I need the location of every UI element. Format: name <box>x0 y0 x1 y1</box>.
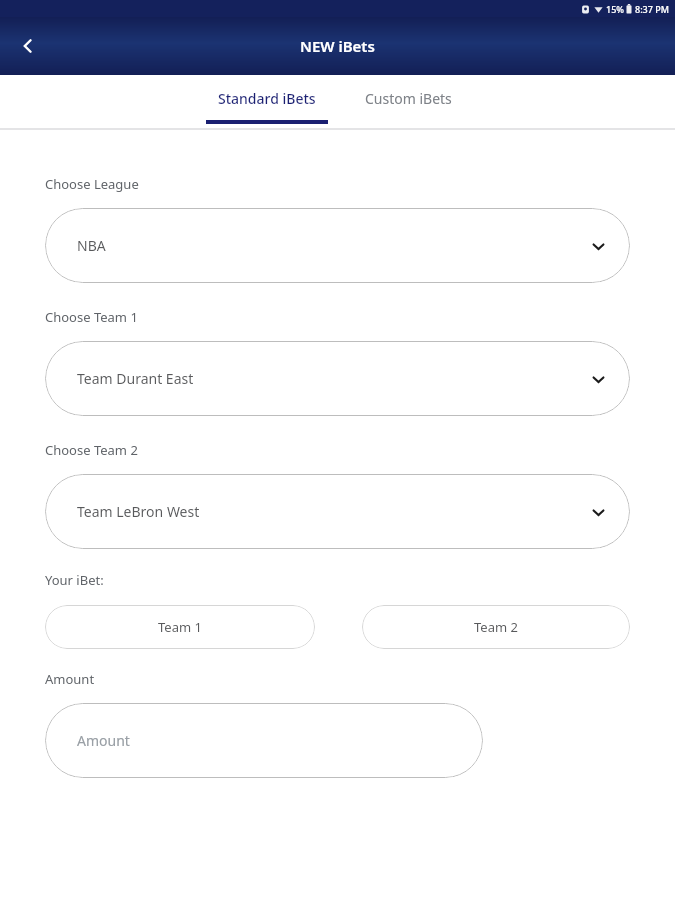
button[interactable]: Amount <box>45 703 483 778</box>
button[interactable]: Custom iBets <box>346 75 470 128</box>
staticText: Team Durant East <box>77 369 194 388</box>
staticText: Your iBet: <box>45 571 104 589</box>
staticText: Standard iBets <box>218 89 316 108</box>
staticText: Amount <box>77 731 130 750</box>
staticText: Custom iBets <box>365 89 452 108</box>
staticText: Choose Team 2 <box>45 441 138 459</box>
staticText: NEW iBets <box>300 36 375 56</box>
button[interactable]: Team Durant East <box>45 341 630 416</box>
staticText: Choose League <box>45 175 139 193</box>
button[interactable]: Standard iBets <box>206 75 328 128</box>
button[interactable]: Team 1 <box>45 605 315 649</box>
button[interactable]: Team 2 <box>362 605 630 649</box>
staticText: Amount <box>45 670 95 688</box>
staticText: Team 2 <box>474 618 518 636</box>
staticText: 15% <box>606 3 624 15</box>
button[interactable]: Back <box>6 24 50 68</box>
button[interactable]: NBA <box>45 208 630 283</box>
staticText: Team 1 <box>158 618 202 636</box>
staticText: Choose Team 1 <box>45 308 138 326</box>
staticText: 8:37 PM <box>635 3 669 15</box>
staticText: Team LeBron West <box>77 502 200 521</box>
staticText: NBA <box>77 236 106 255</box>
button[interactable]: Team LeBron West <box>45 474 630 549</box>
